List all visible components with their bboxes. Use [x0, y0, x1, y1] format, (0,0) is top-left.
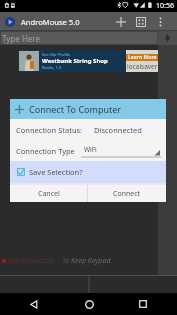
button[interactable]: Add: [112, 12, 130, 31]
staticText: Connect To Computer: [29, 103, 122, 115]
staticText: AndroMouse 5.0: [21, 17, 80, 27]
staticText: Books, 1.5: [42, 65, 62, 70]
button[interactable]: Recents: [123, 293, 163, 315]
staticText: Not Connected: [8, 256, 54, 266]
staticText: Keep Keypad: [71, 256, 111, 266]
button[interactable]: Connect: [88, 185, 166, 202]
button[interactable]: Home: [69, 293, 109, 315]
staticText: Connection Status:: [16, 125, 83, 135]
staticText: Westbank String Shop: [42, 57, 108, 65]
staticText: Connection Type: [16, 146, 75, 156]
staticText: See Our Profile: [42, 52, 71, 57]
button[interactable]: Keypad: [132, 12, 150, 31]
staticText: Type Here: [2, 33, 40, 44]
button[interactable]: [0, 45, 158, 275]
button[interactable]: More options: [153, 12, 167, 31]
button[interactable]: Save Selection?: [10, 161, 166, 183]
staticText: Disconnected: [94, 125, 142, 135]
staticText: WiFi: [84, 145, 97, 154]
button[interactable]: Type Here: [0, 31, 158, 45]
staticText: localsaver: [127, 62, 158, 71]
staticText: Learn More: [128, 54, 157, 61]
button[interactable]: Back: [14, 293, 54, 315]
button[interactable]: Cancel: [10, 185, 87, 202]
button[interactable]: See Our Profile: [18, 50, 158, 72]
button[interactable]: WiFi: [81, 143, 161, 158]
staticText: Save Selection?: [29, 167, 83, 177]
staticText: Cancel: [38, 189, 60, 199]
staticText: Connect: [113, 189, 141, 199]
button[interactable]: Send: [158, 31, 177, 45]
staticText: 10:56: [156, 1, 174, 11]
